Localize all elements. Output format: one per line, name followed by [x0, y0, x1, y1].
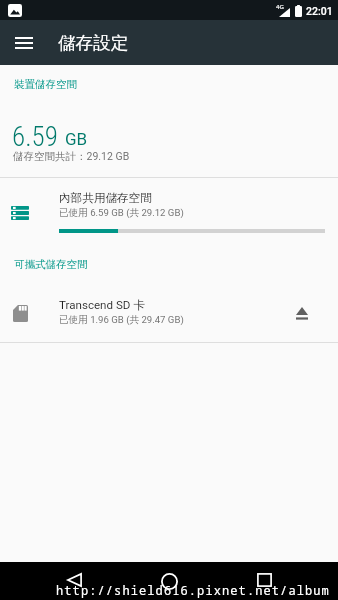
button[interactable]: Back: [56, 562, 92, 598]
staticText: http://shield616.pixnet.net/album: [56, 582, 330, 598]
staticText: GB: [65, 129, 88, 149]
staticText: Transcend SD 卡: [59, 298, 145, 313]
button[interactable]: Home: [151, 563, 187, 599]
button[interactable]: Recents: [246, 562, 282, 598]
button[interactable]: Open navigation drawer: [1, 20, 46, 65]
staticText: 裝置儲存空間: [14, 78, 77, 91]
staticText: 4G: [276, 3, 284, 11]
staticText: 內部共用儲存空間: [59, 191, 152, 206]
staticText: 儲存設定: [58, 32, 128, 54]
staticText: 已使用 1.96 GB (共 29.47 GB): [59, 314, 184, 326]
button[interactable]: Eject: [283, 294, 321, 332]
staticText: 可攜式儲存空間: [14, 258, 88, 271]
staticText: 儲存空間共計：29.12 GB: [13, 150, 130, 163]
staticText: 22:01: [306, 5, 333, 17]
button[interactable]: Transcend SD 卡: [0, 290, 338, 336]
button[interactable]: 內部共用儲存空間: [0, 180, 338, 238]
staticText: 已使用 6.59 GB (共 29.12 GB): [59, 207, 184, 219]
staticText: 6.59: [12, 121, 58, 153]
